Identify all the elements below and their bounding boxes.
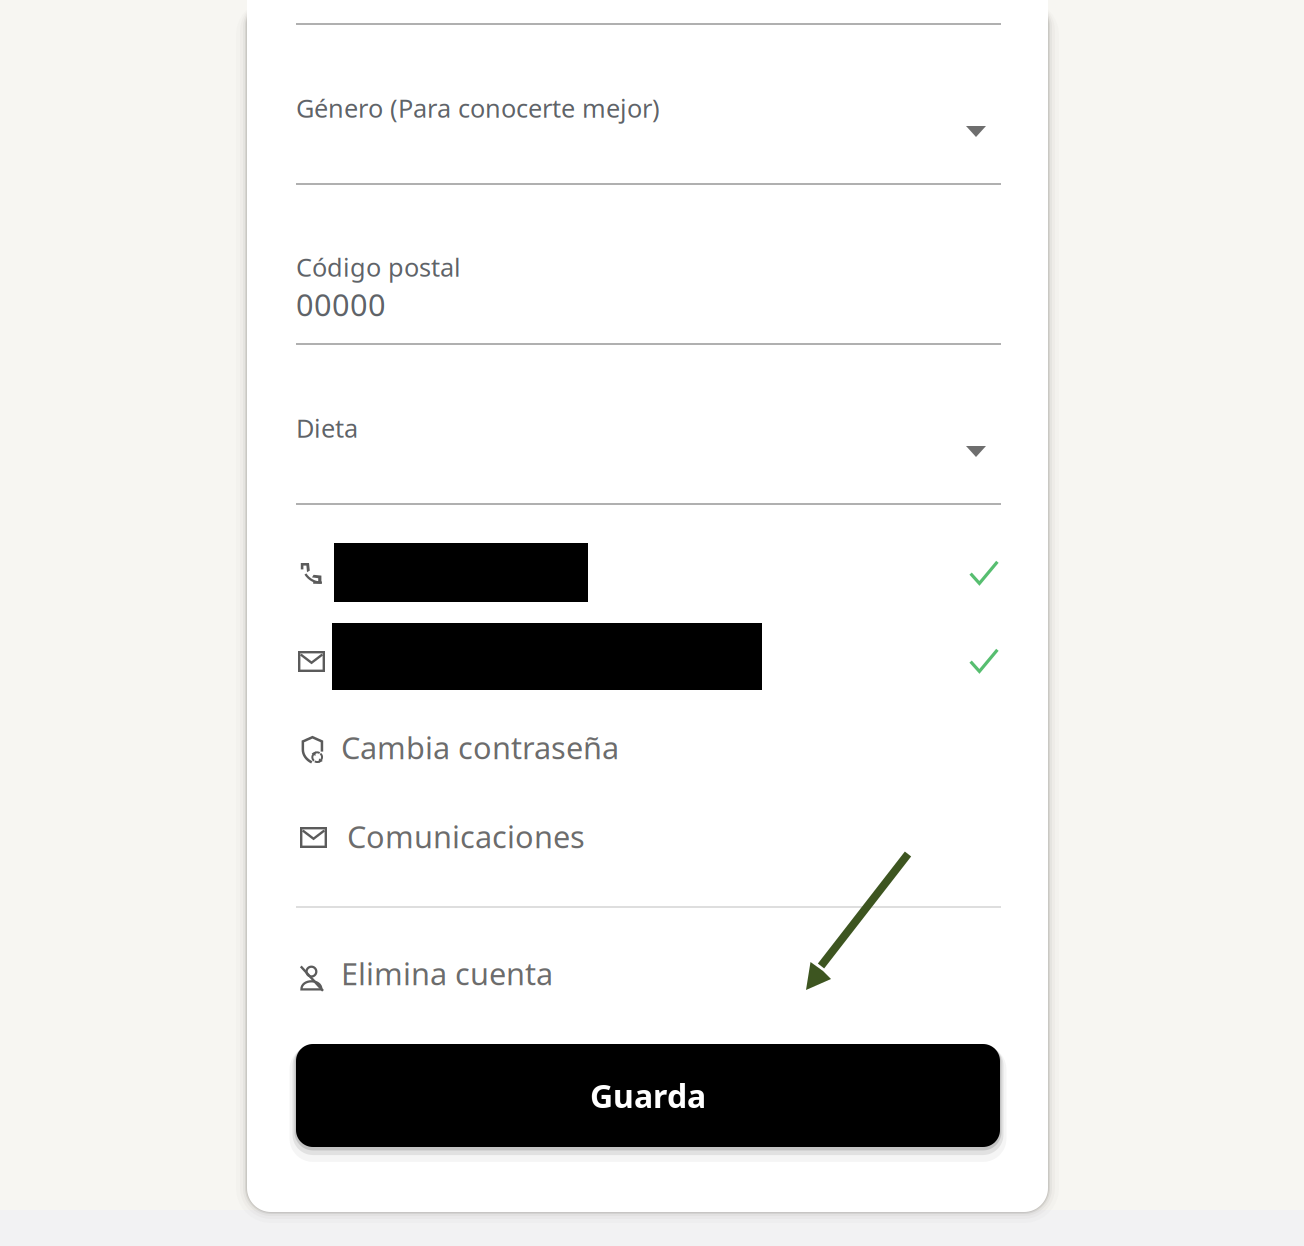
staticText: Comunicaciones <box>347 816 585 857</box>
staticText: Género (Para conocerte mejor) <box>296 91 660 125</box>
button[interactable]: Comunicaciones <box>298 807 1003 867</box>
button[interactable]: Teléfono verificado <box>298 543 1003 623</box>
staticText: Cambia contraseña <box>341 727 619 768</box>
button[interactable]: Género (Para conocerte mejor) <box>296 25 1001 183</box>
staticText: Dieta <box>296 411 358 445</box>
button[interactable]: Guarda <box>296 1044 1000 1147</box>
button[interactable]: Dieta <box>296 345 1001 503</box>
button[interactable]: Correo electrónico verificado <box>298 623 1003 703</box>
staticText: Código postal <box>296 250 461 284</box>
staticText: 00000 <box>296 284 386 325</box>
button[interactable]: Cambia contraseña <box>298 720 1003 780</box>
staticText: Elimina cuenta <box>341 953 553 994</box>
staticText: Guarda <box>590 1074 706 1117</box>
button[interactable]: Elimina cuenta <box>298 945 1003 1005</box>
